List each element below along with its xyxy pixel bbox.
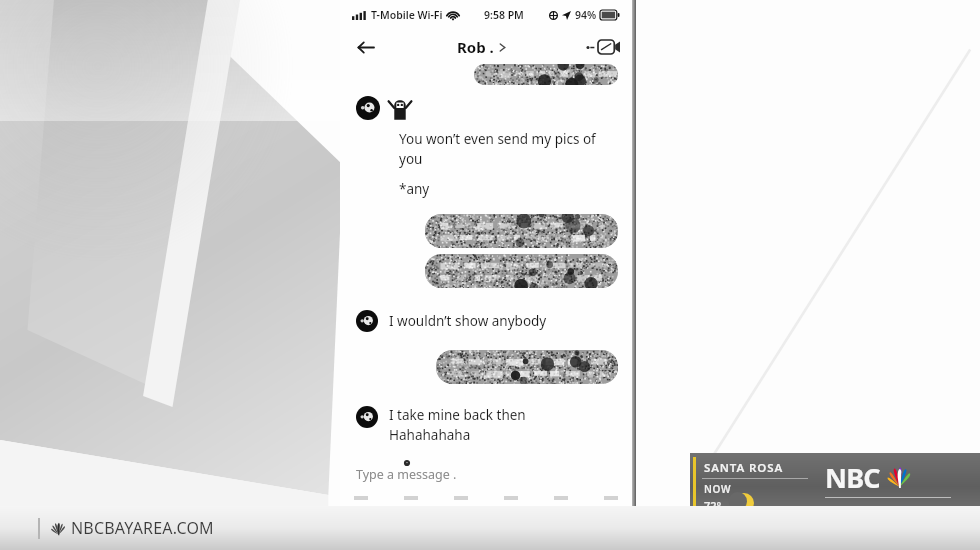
button[interactable]: Redacted message bbox=[425, 214, 618, 248]
staticText: SANTA ROSA bbox=[704, 460, 784, 476]
staticText: 94% bbox=[575, 8, 597, 22]
staticText: BAY AREA bbox=[825, 500, 933, 526]
button[interactable]: SANTA ROSA bbox=[690, 453, 980, 520]
staticText: You won’t even send my pics of you bbox=[399, 130, 596, 168]
staticText: Type a message . bbox=[356, 466, 457, 483]
button[interactable]: Video call bbox=[586, 40, 620, 54]
staticText: 9:58 PM bbox=[484, 8, 524, 22]
staticText: NBCBAYAREA.COM bbox=[71, 517, 214, 539]
staticText: *any bbox=[399, 180, 430, 198]
button[interactable]: Rob . bbox=[457, 37, 507, 57]
button[interactable]: Back bbox=[352, 34, 378, 60]
staticText: I wouldn’t show anybody bbox=[389, 312, 547, 330]
staticText: NBC bbox=[825, 459, 880, 496]
staticText: Rob . bbox=[457, 37, 498, 57]
button[interactable]: Contact avatar bbox=[356, 406, 378, 428]
button[interactable]: Redacted message bbox=[436, 350, 618, 384]
button[interactable]: Redacted message bbox=[474, 64, 618, 85]
button[interactable]: Redacted message bbox=[425, 254, 618, 288]
button[interactable]: Contact avatar bbox=[356, 310, 378, 332]
button[interactable]: NBCBAYAREA.COM bbox=[38, 517, 214, 539]
staticText: T-Mobile Wi-Fi bbox=[371, 8, 443, 22]
staticText: I take mine back then Hahahahaha bbox=[389, 406, 526, 444]
staticText: 72° bbox=[704, 498, 722, 513]
button[interactable]: Contact avatar bbox=[356, 96, 380, 120]
staticText: NOW bbox=[704, 482, 732, 496]
